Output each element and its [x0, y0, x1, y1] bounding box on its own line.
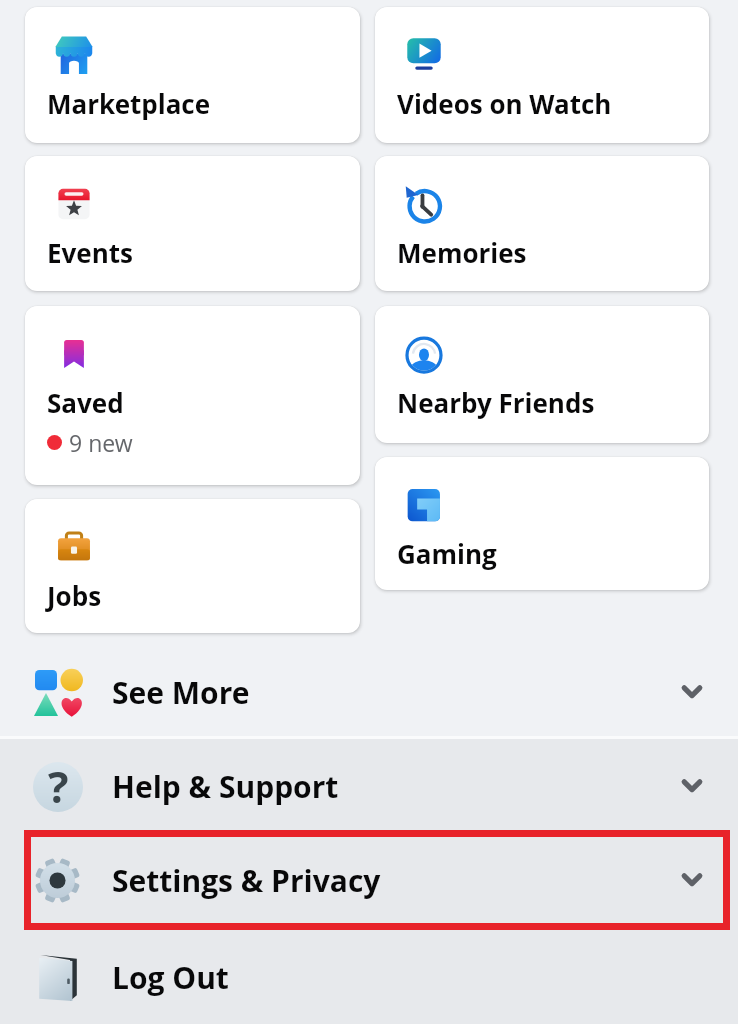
staticText: Gaming: [397, 536, 497, 571]
button[interactable]: Gaming: [375, 457, 709, 590]
button[interactable]: Memories: [375, 156, 709, 291]
staticText: Saved: [47, 385, 124, 420]
staticText: Log Out: [112, 957, 229, 998]
button[interactable]: Videos on Watch: [375, 7, 709, 143]
button[interactable]: Settings & Privacy: [0, 832, 738, 928]
staticText: Jobs: [47, 578, 102, 613]
staticText: Settings & Privacy: [112, 860, 381, 901]
staticText: Events: [47, 235, 134, 270]
staticText: Help & Support: [112, 766, 339, 807]
staticText: Nearby Friends: [397, 385, 595, 420]
button[interactable]: Jobs: [25, 499, 360, 633]
staticText: 9 new: [69, 427, 133, 458]
staticText: Memories: [397, 235, 527, 270]
button[interactable]: Saved: [25, 306, 360, 485]
button[interactable]: See More: [0, 645, 738, 739]
staticText: ?: [48, 757, 69, 814]
button[interactable]: Events: [25, 156, 360, 291]
staticText: See More: [112, 672, 250, 713]
staticText: Marketplace: [47, 86, 211, 121]
staticText: Videos on Watch: [397, 86, 612, 121]
button[interactable]: Marketplace: [25, 7, 360, 143]
button[interactable]: Log Out: [0, 930, 738, 1024]
button[interactable]: ?: [0, 738, 738, 834]
button[interactable]: Nearby Friends: [375, 306, 709, 443]
